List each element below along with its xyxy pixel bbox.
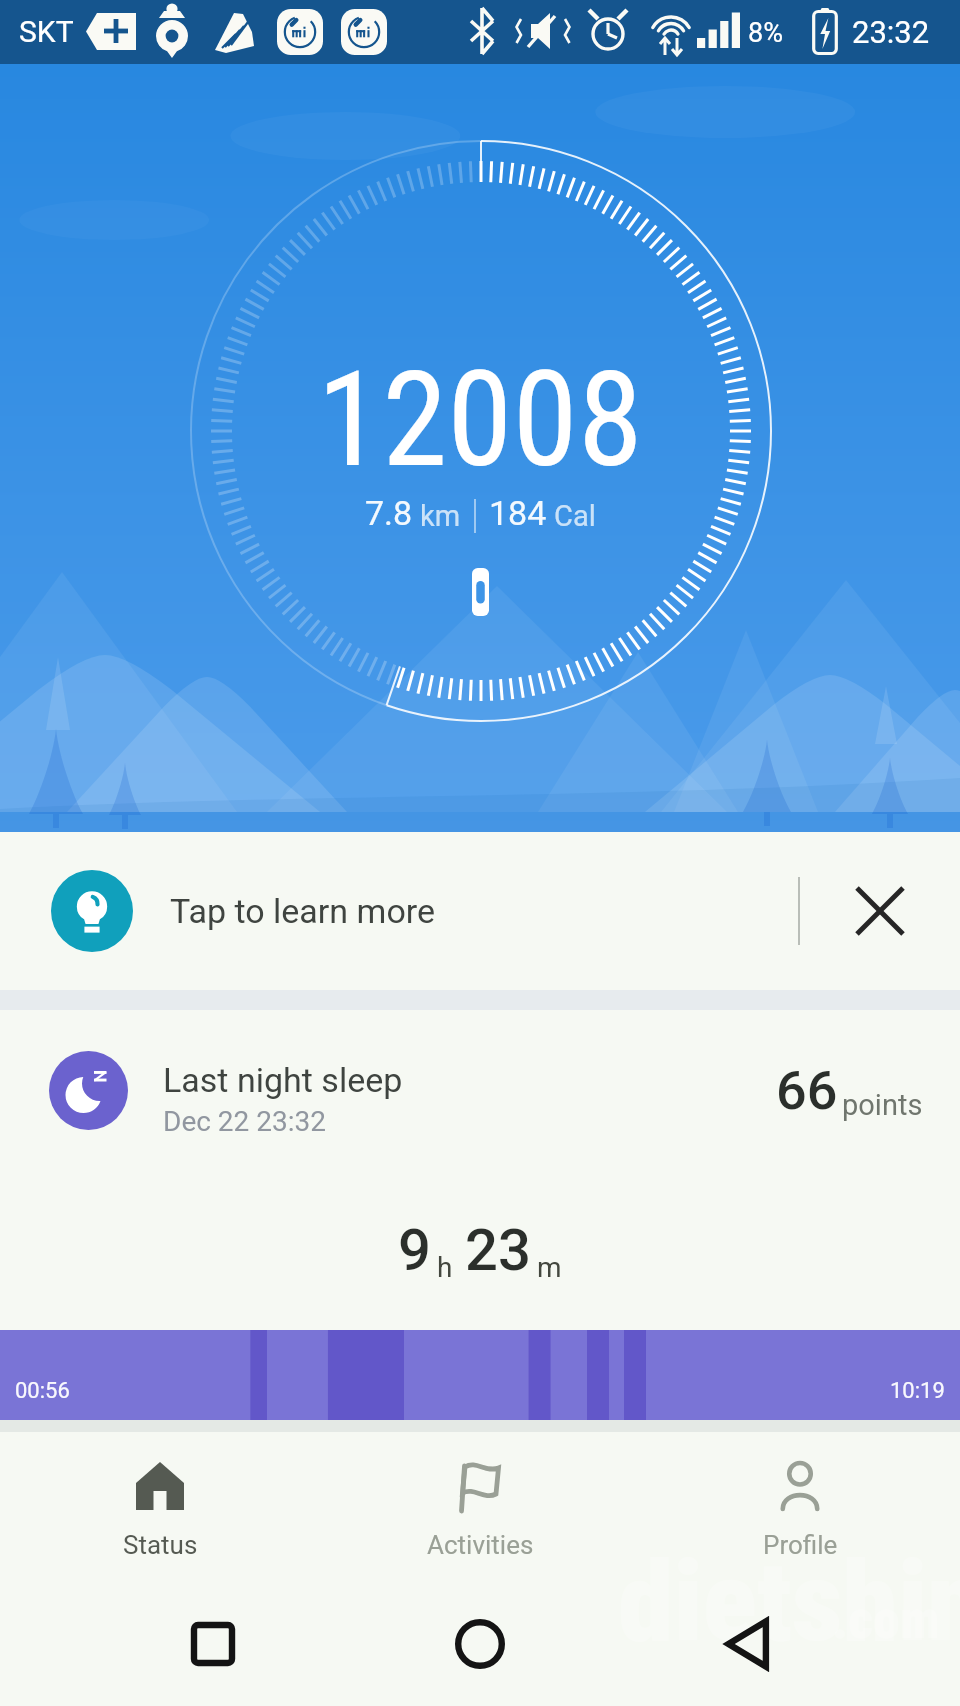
button[interactable]: Recents [143,1582,283,1706]
button[interactable]: Last night sleep [0,1010,960,1330]
staticText: 00:56 [15,1378,70,1404]
staticText: SKT [19,14,74,49]
staticText: Activities [427,1530,534,1560]
staticText: 9 [398,1216,431,1284]
staticText: 66 [776,1059,838,1122]
button[interactable]: Dismiss [800,832,960,990]
staticText: points [842,1088,923,1122]
button[interactable]: Back [677,1582,817,1706]
staticText: h [437,1251,453,1284]
staticText: 184 [489,493,547,533]
staticText: m [537,1251,562,1284]
staticText: Cal [554,499,596,533]
button[interactable]: Profile [640,1432,960,1582]
staticText: 23 [465,1216,531,1284]
staticText: 12008 [317,343,643,498]
staticText: 23:32 [852,14,930,50]
staticText: Profile [763,1530,838,1560]
staticText: 10:19 [890,1378,945,1404]
button[interactable]: 00:56 [0,1330,960,1420]
staticText: Dec 22 23:32 [163,1105,326,1138]
button[interactable]: Home [410,1582,550,1706]
button[interactable]: Tap to learn more [0,832,960,990]
staticText: Tap to learn more [170,891,436,931]
staticText: km [420,499,461,533]
staticText: Status [123,1530,198,1560]
button[interactable]: Status [0,1432,320,1582]
button[interactable]: Activities [320,1432,640,1582]
staticText: 7.8 [365,493,413,533]
staticText: dietshin [618,1536,960,1660]
staticText: Last night sleep [163,1060,403,1100]
staticText: 8% [748,17,783,49]
